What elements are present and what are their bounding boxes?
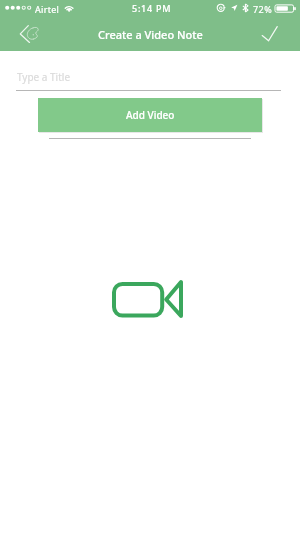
button[interactable]: Done [256,22,286,48]
button[interactable]: Add Video [38,98,262,132]
button[interactable]: Back [12,22,46,48]
staticText: Type a Title [17,70,71,84]
staticText: 5:14 PM [132,2,172,14]
staticText: Add Video [126,108,175,122]
staticText: Create a Video Note [98,27,203,42]
staticText: 72% [253,3,273,15]
staticText: Airtel [35,3,60,15]
